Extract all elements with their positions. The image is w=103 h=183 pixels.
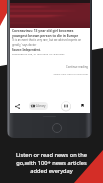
staticText: Coronavirus: 13 year old girl becomes — [12, 28, 74, 32]
staticText: Listen or read news on the go,with 100+ … — [16, 151, 87, 175]
staticText: Library — [36, 104, 46, 108]
staticText: Swipe Next right to hear brief — [10, 72, 88, 75]
button[interactable]: Library — [29, 102, 48, 110]
button[interactable]: Pause — [61, 101, 71, 111]
staticText: Published on Tue, 31 Mar 2020 10:15:00 G… — [12, 52, 65, 55]
staticText: youngest known person to die in Europe — [12, 33, 79, 37]
button[interactable]: Bookmark — [78, 101, 87, 110]
staticText: 'It is an event that is very rare, but w… — [12, 38, 82, 42]
staticText: greatly,' says doctor — [12, 43, 37, 47]
button[interactable]: Share — [12, 101, 22, 111]
staticText: Source: Independent. — [12, 48, 41, 52]
staticText: Continue reading — [10, 65, 88, 69]
